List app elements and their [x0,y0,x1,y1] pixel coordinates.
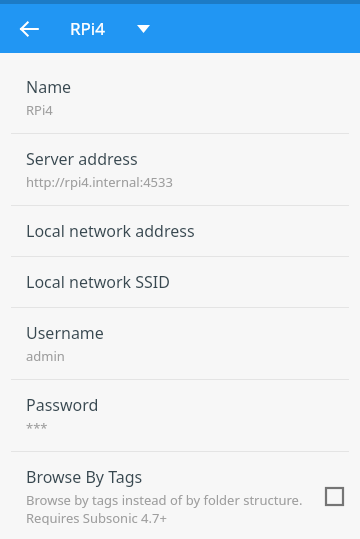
button[interactable]: Local network address [0,206,360,256]
button[interactable]: Username [0,308,360,379]
button[interactable]: Back [12,12,46,46]
staticText: Requires Subsonic 4.7+ [26,509,167,525]
button[interactable]: Browse By Tags [0,452,360,539]
staticText: RPi4 [26,101,53,119]
staticText: Password [26,394,99,416]
staticText: Username [26,322,104,344]
staticText: Local network SSID [26,271,170,293]
staticText: Server address [26,148,138,170]
button[interactable]: Local network SSID [0,257,360,307]
button[interactable]: RPi4 [68,11,152,46]
button[interactable]: Server address [0,134,360,205]
staticText: Browse By Tags [26,466,143,488]
staticText: *** [26,419,48,437]
button[interactable]: Browse By Tags toggle [324,486,344,506]
staticText: Local network address [26,220,195,242]
staticText: http://rpi4.internal:4533 [26,173,173,191]
staticText: RPi4 [70,17,105,40]
button[interactable]: Name [0,62,360,133]
staticText: Name [26,76,72,98]
staticText: admin [26,347,65,365]
staticText: Browse by tags instead of by folder stru… [26,491,303,509]
button[interactable]: Password [0,380,360,451]
